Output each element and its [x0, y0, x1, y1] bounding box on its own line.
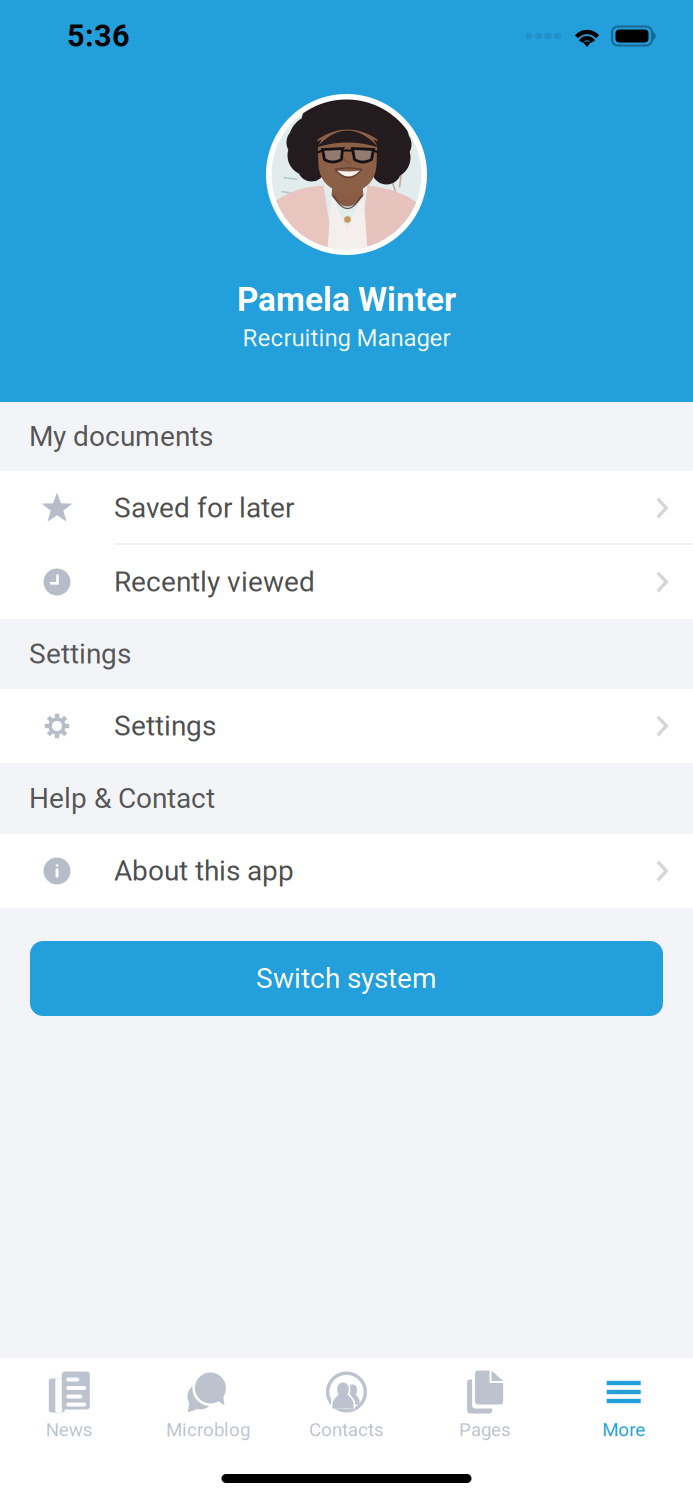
button[interactable]: News — [0, 1371, 139, 1441]
staticText: Help & Contact — [29, 782, 215, 815]
staticText: Contacts — [309, 1419, 384, 1441]
staticText: More — [602, 1419, 645, 1441]
button[interactable]: Microblog — [139, 1371, 277, 1441]
staticText: Saved for later — [114, 492, 294, 524]
button[interactable]: Switch system — [30, 941, 663, 1016]
button[interactable]: More — [554, 1371, 693, 1441]
staticText: Pages — [459, 1419, 511, 1441]
staticText: My documents — [29, 420, 213, 453]
button[interactable]: Saved for later — [0, 471, 693, 545]
staticText: Recruiting Manager — [242, 324, 450, 352]
staticText: Settings — [114, 710, 216, 742]
staticText: About this app — [114, 855, 294, 887]
staticText: News — [46, 1419, 93, 1441]
staticText: Pamela Winter — [237, 280, 456, 319]
staticText: Microblog — [166, 1419, 250, 1441]
button[interactable]: Recently viewed — [0, 545, 693, 619]
button[interactable]: Contacts — [277, 1371, 416, 1441]
button[interactable]: Pages — [416, 1371, 554, 1441]
staticText: Switch system — [256, 962, 437, 995]
button[interactable]: Settings — [0, 689, 693, 763]
staticText: 5:36 — [67, 18, 130, 54]
staticText: Settings — [29, 638, 131, 670]
button[interactable]: About this app — [0, 834, 693, 908]
staticText: Recently viewed — [114, 566, 315, 598]
